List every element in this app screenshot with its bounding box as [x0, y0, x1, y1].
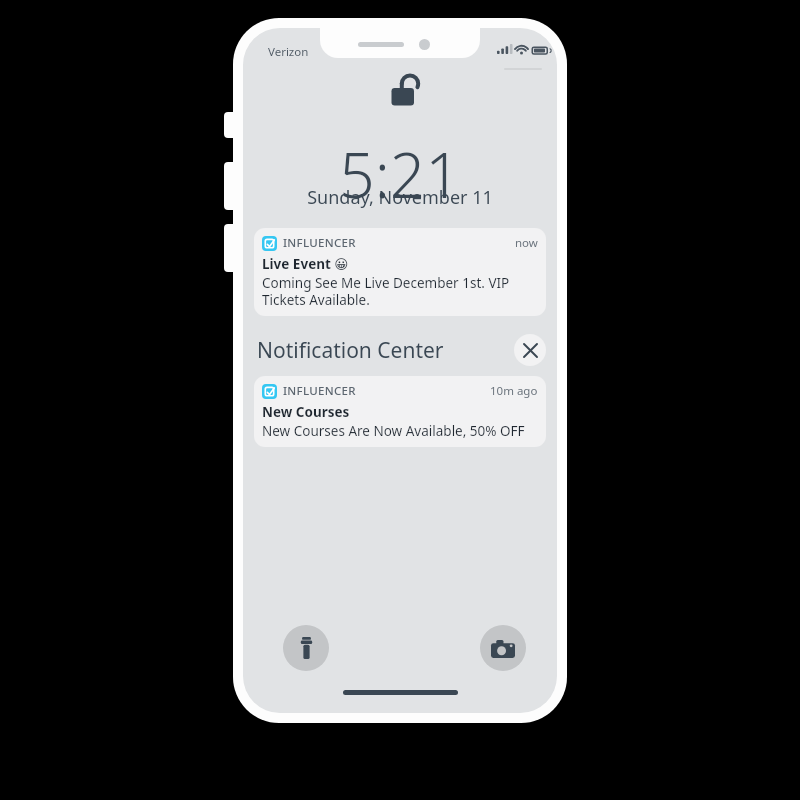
staticText: Coming See Me Live December 1st. VIP Tic… [262, 274, 510, 309]
staticText: INFLUENCER [283, 383, 490, 399]
staticText: Verizon [268, 44, 309, 60]
staticText: Sunday, November 11 [307, 185, 493, 210]
staticText: Notification Center [257, 336, 514, 365]
staticText: New Courses Are Now Available, 50% OFF [262, 422, 525, 440]
button[interactable]: Volume up [224, 162, 235, 210]
button[interactable]: Volume down [224, 224, 235, 272]
button[interactable]: Clear notifications [514, 334, 546, 366]
staticText: Live Event 😀 [262, 255, 349, 273]
staticText: 5:21 [339, 132, 461, 216]
staticText: now [515, 235, 538, 251]
button[interactable]: Mute switch [224, 112, 235, 138]
button[interactable]: INFLUENCER [254, 228, 546, 316]
staticText: New Courses [262, 403, 350, 421]
staticText: INFLUENCER [283, 235, 515, 251]
button[interactable]: Flashlight [283, 625, 329, 671]
button[interactable]: INFLUENCER [254, 376, 546, 447]
button[interactable]: Camera [480, 625, 526, 671]
staticText: 10m ago [490, 383, 538, 399]
